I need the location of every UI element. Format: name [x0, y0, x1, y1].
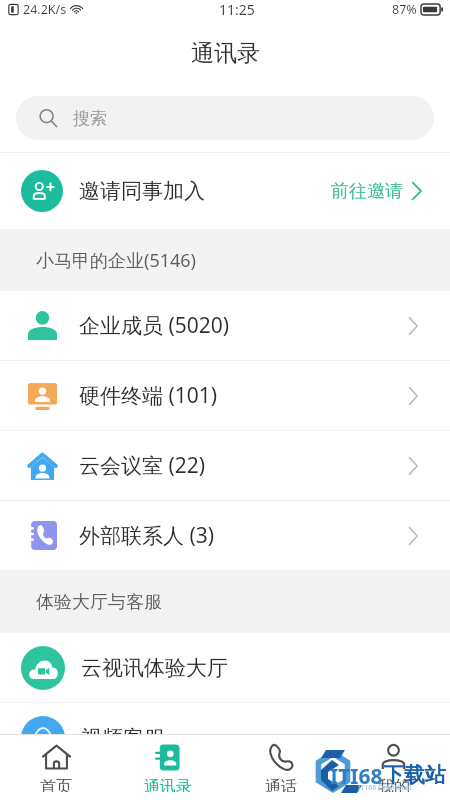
- staticText: 通讯录: [144, 777, 192, 792]
- staticText: 前往邀请: [331, 180, 403, 203]
- staticText: 我的: [378, 777, 410, 792]
- button[interactable]: Home: [0, 735, 112, 800]
- staticText: 硬件终端 (101): [79, 381, 218, 410]
- staticText: 视频客服: [81, 725, 165, 751]
- button[interactable]: Calls: [224, 735, 337, 800]
- staticText: 通讯录: [191, 39, 260, 68]
- staticText: 外部联系人 (3): [79, 521, 215, 550]
- button[interactable]: 硬件终端 (101): [0, 361, 450, 430]
- staticText: 下载站: [383, 762, 446, 788]
- button[interactable]: 云视讯体验大厅: [0, 633, 450, 702]
- button[interactable]: 云会议室 (22): [0, 431, 450, 500]
- button[interactable]: Contacts: [112, 735, 224, 800]
- staticText: 11:25: [219, 0, 255, 19]
- staticText: 搜索: [73, 108, 107, 129]
- staticText: 24.2K/s: [23, 1, 67, 18]
- staticText: 企业成员 (5020): [79, 311, 230, 340]
- staticText: 云会议室 (22): [79, 451, 206, 480]
- staticText: 首页: [40, 777, 72, 792]
- staticText: IT168 Download: [358, 783, 412, 793]
- staticText: 小马甲的企业(5146): [36, 248, 196, 273]
- staticText: 邀请同事加入: [79, 178, 205, 204]
- button[interactable]: 搜索: [16, 96, 434, 140]
- staticText: 云视讯体验大厅: [81, 655, 228, 681]
- button[interactable]: 视频客服: [0, 703, 450, 772]
- button[interactable]: 企业成员 (5020): [0, 291, 450, 360]
- staticText: ITI68: [330, 762, 383, 791]
- staticText: 通话: [265, 777, 297, 792]
- staticText: 体验大厅与客服: [36, 591, 162, 614]
- staticText: 87%: [392, 1, 417, 18]
- button[interactable]: 外部联系人 (3): [0, 501, 450, 570]
- button[interactable]: Mine: [337, 735, 450, 800]
- button[interactable]: 邀请同事加入: [0, 153, 450, 229]
